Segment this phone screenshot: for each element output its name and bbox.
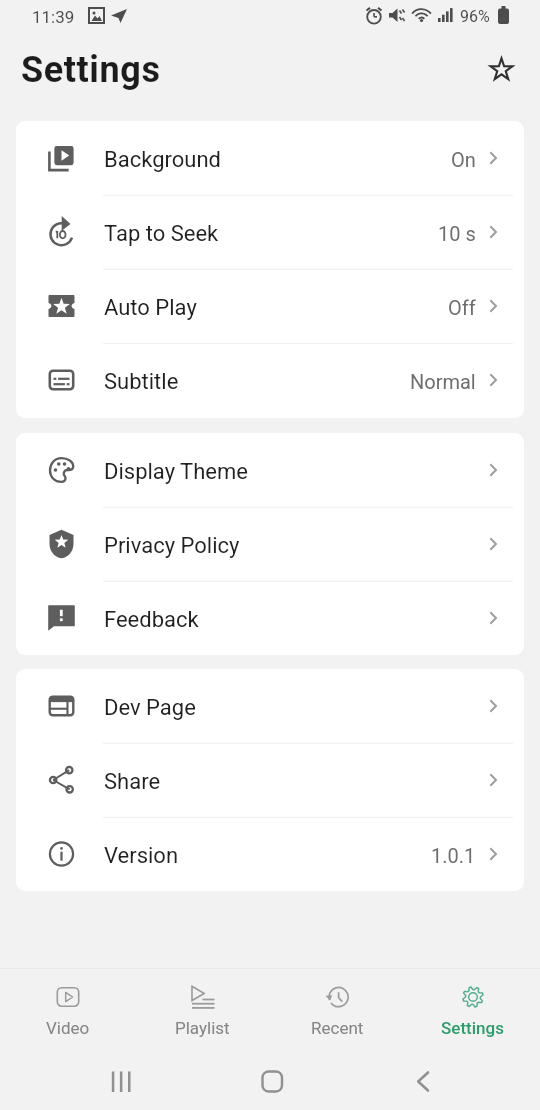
staticText: Settings (21, 49, 161, 91)
staticText: Background (104, 147, 221, 173)
staticText: Settings (441, 1018, 504, 1038)
button[interactable]: Recent apps (97, 1056, 540, 1110)
staticText: Version (104, 843, 179, 869)
staticText: Share (104, 769, 161, 795)
button[interactable]: Display Theme (16, 433, 524, 507)
staticText: Dev Page (104, 695, 196, 721)
staticText: 1.0.1 (431, 844, 476, 867)
staticText: Auto Play (104, 295, 197, 321)
button[interactable]: Share (16, 743, 524, 817)
button[interactable]: Background (16, 121, 524, 195)
button[interactable]: Tap to Seek (16, 195, 524, 269)
staticText: Subtitle (104, 369, 179, 395)
staticText: On (451, 148, 476, 171)
staticText: Tap to Seek (104, 221, 219, 247)
button[interactable]: Video (0, 969, 135, 1056)
staticText: Privacy Policy (104, 533, 240, 559)
staticText: Off (448, 296, 476, 319)
button[interactable]: Favorite (485, 52, 517, 84)
staticText: Video (46, 1018, 90, 1038)
button[interactable]: Dev Page (16, 669, 524, 743)
staticText: 96% (460, 7, 490, 26)
button[interactable]: Auto Play (16, 269, 524, 343)
button[interactable]: Version (16, 817, 524, 891)
staticText: Feedback (104, 607, 199, 633)
button[interactable]: Settings (405, 969, 540, 1056)
button[interactable]: Privacy Policy (16, 507, 524, 581)
button[interactable]: Recent (270, 969, 405, 1056)
staticText: Display Theme (104, 459, 248, 485)
staticText: Normal (410, 370, 476, 393)
staticText: 10 s (438, 222, 476, 245)
button[interactable]: Feedback (16, 581, 524, 655)
button[interactable]: Playlist (135, 969, 270, 1056)
staticText: Recent (311, 1018, 364, 1038)
button[interactable]: Subtitle (16, 343, 524, 417)
button[interactable]: Back (399, 1056, 540, 1110)
button[interactable]: Home (248, 1056, 540, 1110)
staticText: Playlist (175, 1018, 230, 1038)
staticText: 11:39 (32, 7, 75, 27)
